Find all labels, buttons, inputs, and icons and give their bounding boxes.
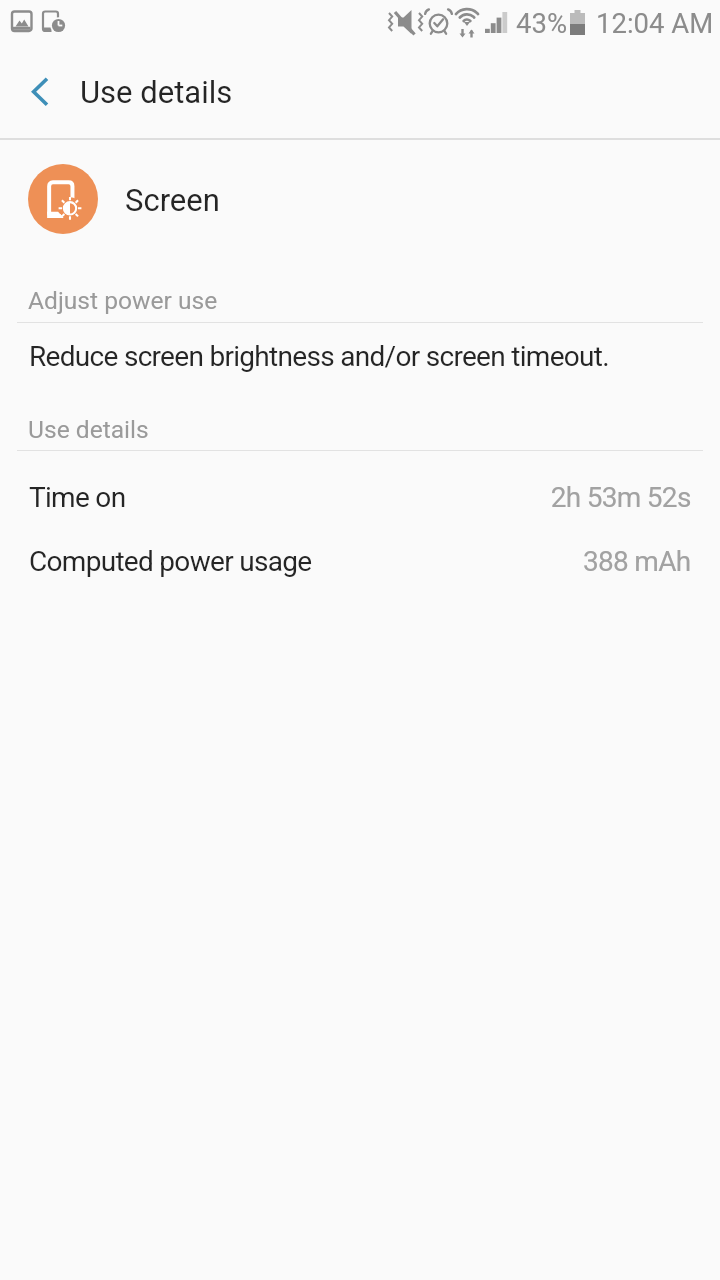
button[interactable]: Computed power usage <box>0 539 720 603</box>
button[interactable]: Reduce screen brightness and/or screen t… <box>0 330 720 386</box>
staticText: 43% <box>516 7 568 39</box>
staticText: 2h 53m 52s <box>551 481 691 514</box>
staticText: Reduce screen brightness and/or screen t… <box>29 340 609 373</box>
staticText: 388 mAh <box>583 545 691 578</box>
staticText: Adjust power use <box>28 286 218 315</box>
button[interactable]: Screen <box>0 148 720 250</box>
staticText: Screen <box>125 182 220 218</box>
button[interactable]: Navigate up <box>16 62 76 122</box>
button[interactable]: Time on <box>0 475 720 539</box>
staticText: Use details <box>28 415 149 444</box>
staticText: Time on <box>29 481 126 514</box>
staticText: Use details <box>80 74 233 110</box>
staticText: 12:04 AM <box>596 7 714 39</box>
staticText: Computed power usage <box>29 545 312 578</box>
